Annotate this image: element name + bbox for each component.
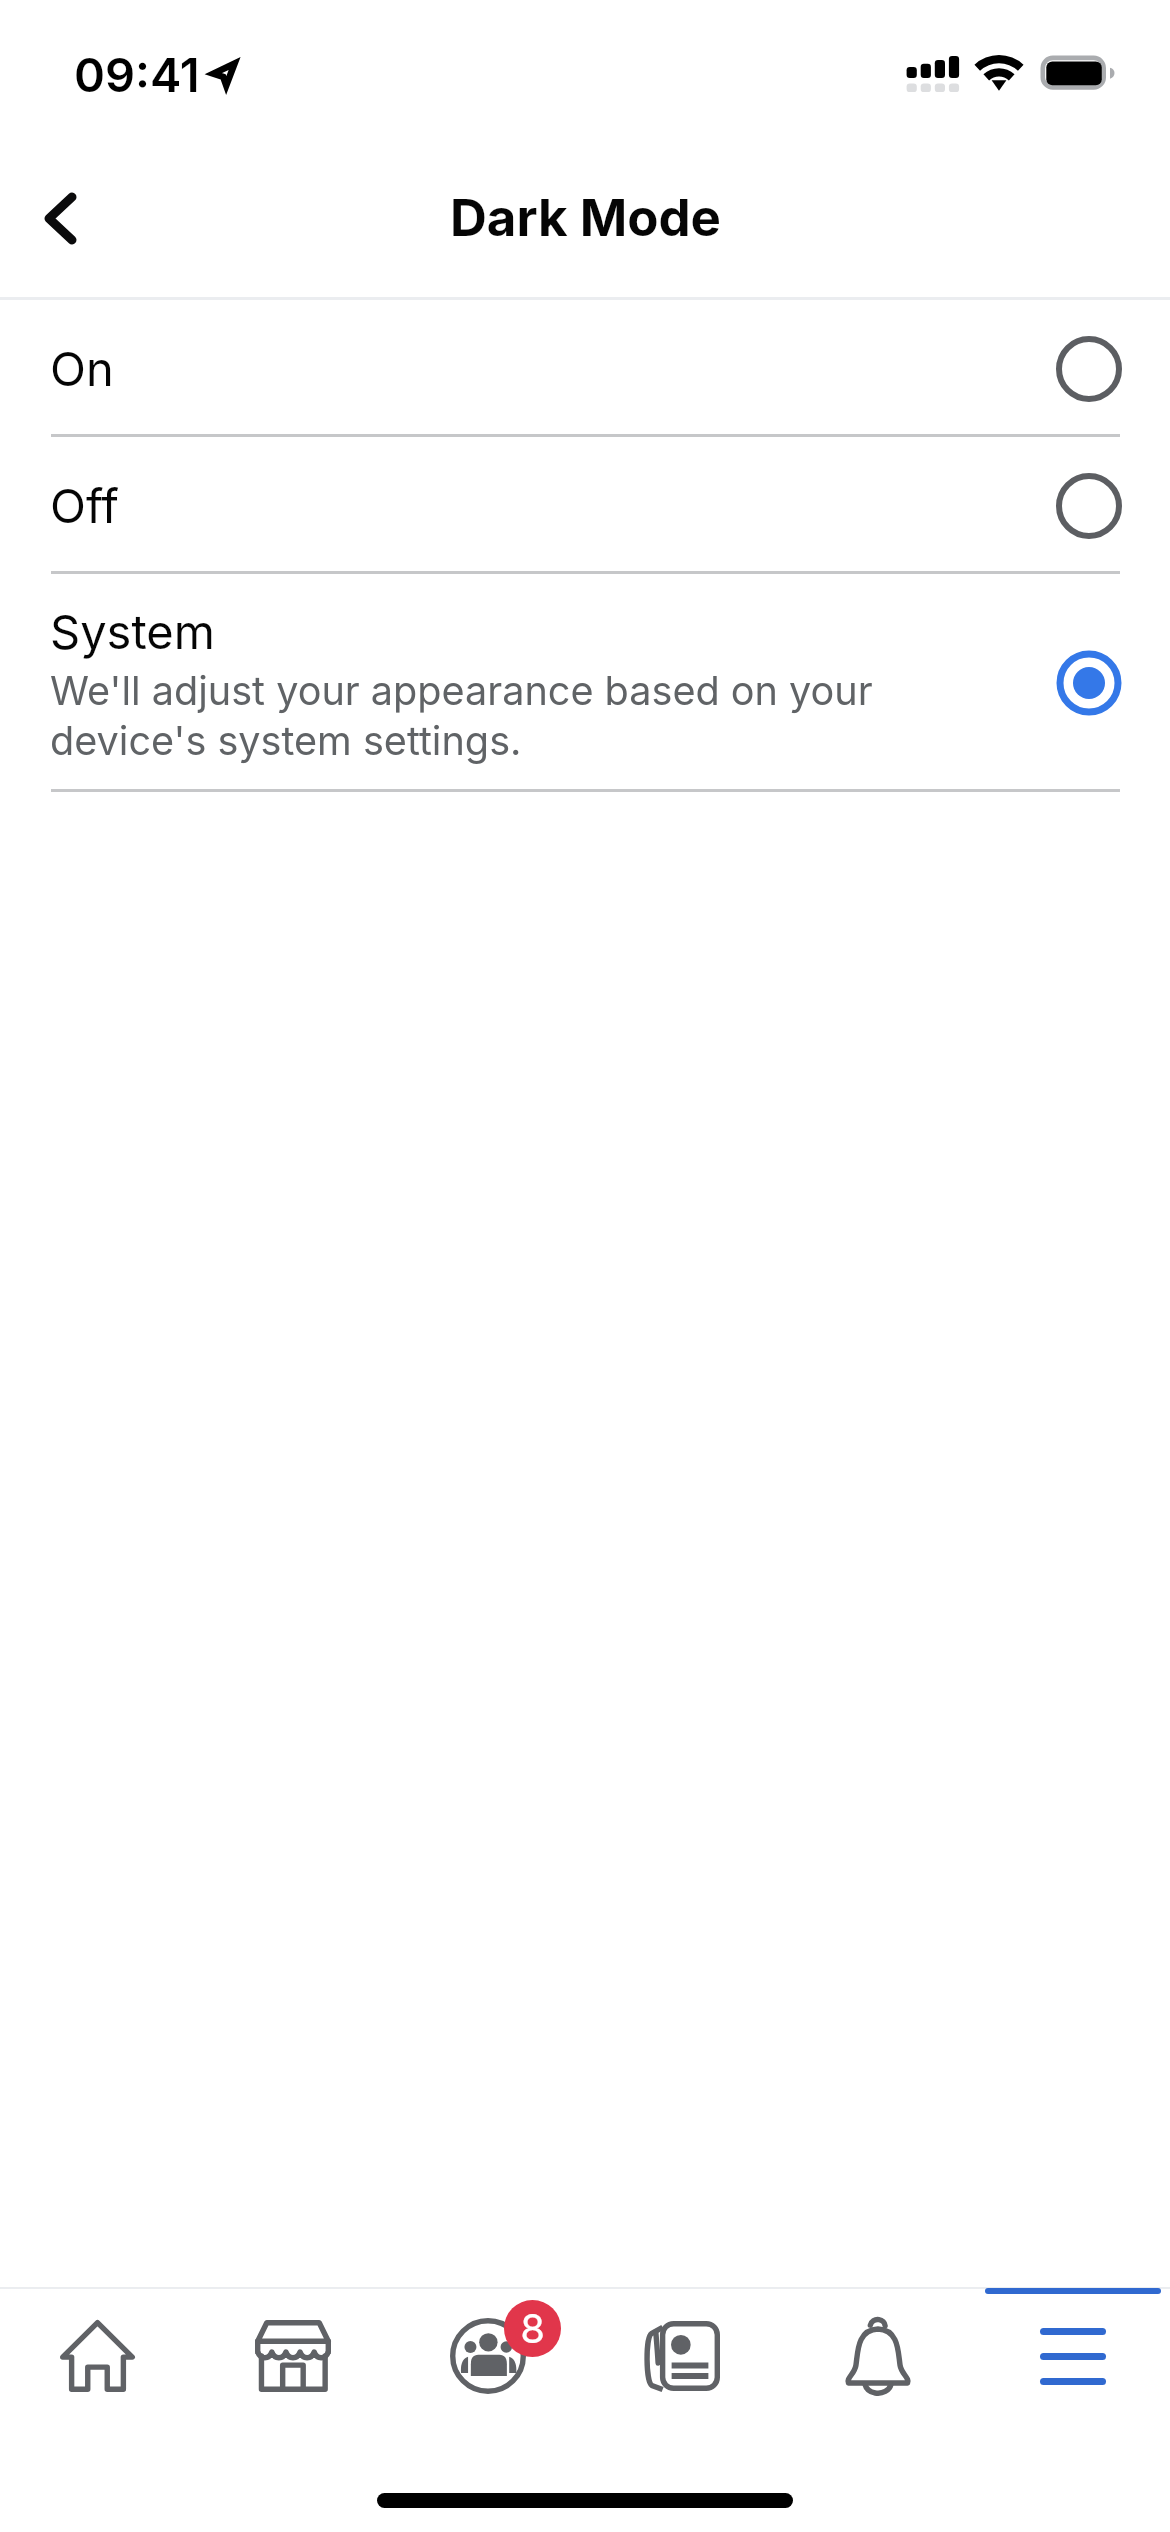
button[interactable]: News <box>585 2287 780 2452</box>
button[interactable]: Home <box>0 2287 195 2452</box>
button[interactable]: Notifications <box>780 2287 975 2452</box>
button[interactable]: System <box>0 574 1170 792</box>
button[interactable]: Back <box>0 153 124 293</box>
button[interactable]: Groups <box>390 2287 585 2452</box>
staticText: 09:41 <box>74 46 200 103</box>
button[interactable]: Menu <box>975 2287 1170 2452</box>
button[interactable]: Off <box>0 437 1170 574</box>
staticText: Off <box>50 477 119 534</box>
button[interactable]: On <box>0 300 1170 437</box>
staticText: 8 <box>520 2304 545 2352</box>
staticText: Dark Mode <box>450 187 721 249</box>
staticText: On <box>50 340 114 397</box>
staticText: System <box>50 603 215 660</box>
button[interactable]: Marketplace <box>195 2287 390 2452</box>
staticText: We'll adjust your appearance based on yo… <box>50 667 873 764</box>
